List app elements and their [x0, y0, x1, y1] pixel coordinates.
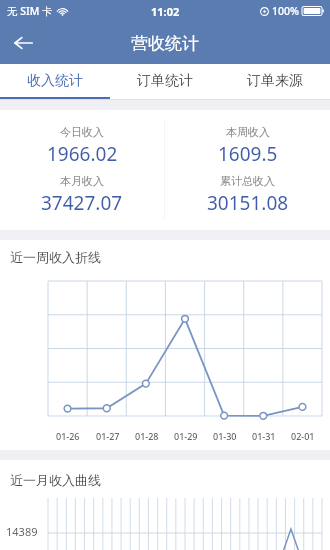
staticText: 37427.07: [41, 190, 123, 216]
staticText: 近一周收入折线: [10, 249, 101, 265]
button[interactable]: 订单统计: [110, 64, 220, 97]
staticText: 01-31: [252, 430, 276, 442]
staticText: 近一月收入曲线: [10, 472, 101, 488]
staticText: 订单统计: [137, 72, 193, 90]
staticText: 1609.5: [218, 141, 278, 167]
staticText: 本周收入: [226, 125, 270, 139]
staticText: 01-26: [56, 430, 80, 442]
button[interactable]: 收入统计: [0, 64, 110, 97]
staticText: 累计总收入: [220, 174, 275, 188]
staticText: 01-27: [96, 430, 120, 442]
staticText: 01-29: [174, 430, 198, 442]
staticText: 订单来源: [247, 72, 303, 90]
staticText: 无 SIM 卡: [7, 4, 53, 18]
staticText: 100%: [272, 4, 299, 18]
staticText: 02-01: [291, 430, 315, 442]
staticText: 收入统计: [27, 72, 83, 90]
staticText: 11:02: [151, 4, 180, 19]
staticText: 01-28: [135, 430, 159, 442]
staticText: 营收统计: [131, 33, 199, 54]
staticText: 本月收入: [60, 174, 104, 188]
button[interactable]: Back: [0, 22, 46, 64]
staticText: 1966.02: [47, 141, 118, 167]
staticText: 01-30: [213, 430, 237, 442]
button[interactable]: 订单来源: [220, 64, 330, 97]
staticText: 今日收入: [60, 125, 104, 139]
staticText: 30151.08: [207, 190, 289, 216]
staticText: 14389: [6, 524, 38, 539]
